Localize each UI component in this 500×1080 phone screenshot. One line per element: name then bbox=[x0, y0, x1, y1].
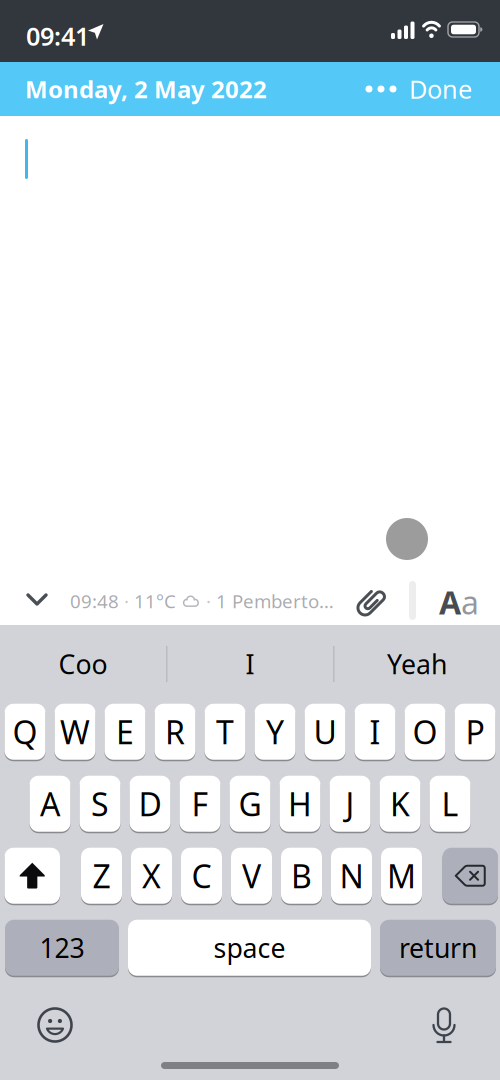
staticText: L bbox=[441, 782, 458, 825]
button[interactable]: N bbox=[331, 847, 372, 904]
button[interactable]: Dismiss keyboard bbox=[20, 585, 54, 615]
staticText: W bbox=[60, 710, 90, 753]
button[interactable]: W bbox=[54, 703, 95, 760]
staticText: K bbox=[390, 782, 410, 825]
staticText: N bbox=[339, 854, 363, 897]
staticText: B bbox=[291, 854, 312, 897]
button[interactable]: Yeah bbox=[337, 635, 497, 693]
staticText: A bbox=[40, 782, 60, 825]
button[interactable]: Entry metadata bbox=[70, 586, 334, 616]
button[interactable]: U bbox=[304, 703, 345, 760]
button[interactable]: K bbox=[379, 775, 420, 832]
staticText: Yeah bbox=[387, 646, 447, 682]
staticText: R bbox=[165, 710, 185, 753]
staticText: 09:48 bbox=[70, 589, 119, 613]
staticText: Coo bbox=[58, 646, 107, 682]
button[interactable]: R bbox=[154, 703, 195, 760]
button[interactable]: Done bbox=[409, 67, 472, 111]
staticText: U bbox=[313, 710, 336, 753]
staticText: S bbox=[91, 782, 109, 825]
button[interactable]: 123 bbox=[5, 919, 119, 976]
staticText: V bbox=[242, 854, 261, 897]
button[interactable]: A bbox=[29, 775, 70, 832]
button[interactable]: Y bbox=[254, 703, 295, 760]
button[interactable]: Delete bbox=[442, 847, 498, 904]
staticText: · bbox=[206, 589, 211, 613]
button[interactable]: H bbox=[279, 775, 320, 832]
staticText: space bbox=[213, 930, 285, 965]
staticText: 1 Pemberto… bbox=[216, 589, 334, 613]
button[interactable]: V bbox=[231, 847, 272, 904]
staticText: 09:41 bbox=[26, 19, 89, 53]
button[interactable]: P bbox=[454, 703, 495, 760]
staticText: F bbox=[191, 782, 208, 825]
button[interactable]: O bbox=[404, 703, 445, 760]
staticText: 11°C bbox=[134, 589, 176, 613]
staticText: Z bbox=[92, 854, 110, 897]
staticText: Monday, 2 May 2022 bbox=[25, 73, 267, 105]
button[interactable]: Emoji bbox=[33, 1003, 77, 1047]
staticText: H bbox=[288, 782, 312, 825]
staticText: P bbox=[465, 710, 484, 753]
button[interactable]: Attachments bbox=[353, 584, 389, 620]
button[interactable]: S bbox=[79, 775, 120, 832]
staticText: · bbox=[124, 589, 129, 613]
staticText: C bbox=[191, 854, 211, 897]
staticText: G bbox=[238, 782, 261, 825]
staticText: 123 bbox=[39, 930, 84, 965]
button[interactable]: return bbox=[380, 919, 496, 976]
button[interactable]: B bbox=[281, 847, 322, 904]
button[interactable]: Coo bbox=[3, 635, 163, 693]
staticText: I bbox=[245, 646, 254, 682]
staticText: return bbox=[399, 930, 477, 965]
button[interactable]: space bbox=[128, 919, 371, 976]
button[interactable]: T bbox=[204, 703, 245, 760]
button[interactable]: More bbox=[362, 67, 400, 111]
staticText: Q bbox=[12, 710, 37, 753]
button[interactable]: Z bbox=[81, 847, 122, 904]
staticText: a bbox=[461, 581, 479, 623]
button[interactable]: M bbox=[381, 847, 422, 904]
button[interactable]: F bbox=[179, 775, 220, 832]
staticText: T bbox=[216, 710, 234, 753]
staticText: J bbox=[345, 782, 354, 825]
button[interactable]: C bbox=[181, 847, 222, 904]
button[interactable]: I bbox=[170, 635, 330, 693]
staticText: O bbox=[412, 710, 437, 753]
button[interactable]: I bbox=[354, 703, 395, 760]
staticText: D bbox=[138, 782, 161, 825]
button[interactable]: L bbox=[429, 775, 470, 832]
button[interactable]: Q bbox=[4, 703, 45, 760]
button[interactable]: J bbox=[329, 775, 370, 832]
button[interactable]: G bbox=[229, 775, 270, 832]
staticText: X bbox=[142, 854, 161, 897]
staticText: E bbox=[116, 710, 134, 753]
staticText: Done bbox=[409, 72, 472, 106]
staticText: A bbox=[439, 581, 461, 623]
button[interactable]: X bbox=[131, 847, 172, 904]
button[interactable]: Shift bbox=[4, 847, 60, 904]
button[interactable]: Dictation bbox=[422, 1004, 466, 1048]
button[interactable]: E bbox=[104, 703, 145, 760]
staticText: I bbox=[369, 710, 380, 753]
button[interactable]: D bbox=[129, 775, 170, 832]
staticText: Y bbox=[266, 710, 284, 753]
button[interactable]: Formatting bbox=[439, 585, 479, 619]
staticText: M bbox=[387, 854, 416, 897]
